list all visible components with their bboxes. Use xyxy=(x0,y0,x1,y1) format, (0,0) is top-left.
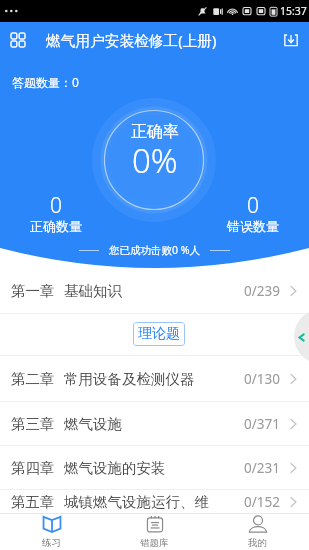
staticText: 基础知识 xyxy=(64,282,122,300)
staticText: 正确数量 xyxy=(30,218,82,234)
staticText: 燃气用户安装检修工(上册) xyxy=(46,30,217,50)
staticText: 答题数量：0 xyxy=(12,74,79,90)
button[interactable]: 第四章 xyxy=(0,446,309,489)
button[interactable]: Expand panel xyxy=(294,309,309,364)
staticText: 0/152 xyxy=(244,493,280,511)
button[interactable]: 理论题 xyxy=(133,322,185,346)
staticText: 错题库 xyxy=(140,537,169,549)
staticText: 我的 xyxy=(248,537,267,549)
staticText: 0 xyxy=(247,191,259,220)
staticText: 0% xyxy=(132,138,178,183)
button[interactable]: 第一章 xyxy=(0,269,309,313)
button[interactable]: 第三章 xyxy=(0,402,309,445)
staticText: 练习 xyxy=(42,537,61,549)
staticText: 0/231 xyxy=(244,459,280,477)
staticText: 0/130 xyxy=(244,370,280,388)
staticText: 第五章 xyxy=(11,493,55,511)
button[interactable]: 第五章 xyxy=(0,490,309,513)
staticText: 第三章 xyxy=(11,415,55,433)
staticText: 燃气设施 xyxy=(64,415,122,433)
staticText: 15:37 xyxy=(280,4,307,18)
button[interactable]: 第二章 xyxy=(0,356,309,401)
staticText: 城镇燃气设施运行、维 xyxy=(64,493,209,511)
staticText: 理论题 xyxy=(138,325,180,343)
staticText: 正确率 xyxy=(131,122,179,142)
staticText: 0/239 xyxy=(244,282,280,300)
staticText: 0/371 xyxy=(244,415,280,433)
button[interactable]: 我的 xyxy=(206,514,309,550)
staticText: 第一章 xyxy=(11,282,55,300)
staticText: 错误数量 xyxy=(227,218,279,234)
button[interactable]: 错题库 xyxy=(103,514,206,550)
staticText: 第四章 xyxy=(11,459,55,477)
button[interactable]: Download xyxy=(273,22,309,58)
staticText: 您已成功击败0 %人 xyxy=(109,243,200,257)
staticText: 0 xyxy=(50,191,62,220)
staticText: 常用设备及检测仪器 xyxy=(64,370,195,388)
button[interactable]: 练习 xyxy=(0,514,103,550)
staticText: 第二章 xyxy=(11,370,55,388)
button[interactable]: Menu xyxy=(0,22,36,58)
staticText: 燃气设施的安装 xyxy=(64,459,166,477)
